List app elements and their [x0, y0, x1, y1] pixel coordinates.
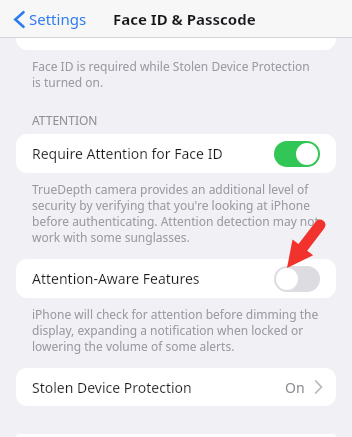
staticText: Face ID & Passcode: [113, 9, 256, 29]
other: Off: [274, 266, 320, 292]
staticText: On: [285, 378, 305, 397]
staticText: Face ID is required while Stolen Device …: [32, 58, 320, 90]
other: On: [274, 141, 320, 167]
staticText: iPhone will check for attention before d…: [32, 306, 320, 354]
staticText: Attention-Aware Features: [32, 269, 274, 288]
button[interactable]: Settings: [10, 5, 91, 33]
button[interactable]: Require Attention for Face ID: [16, 134, 336, 173]
button[interactable]: Stolen Device Protection: [16, 368, 336, 406]
staticText: TrueDepth camera provides an additional …: [32, 181, 320, 245]
staticText: Settings: [29, 9, 87, 29]
button[interactable]: Attention-Aware Features: [16, 259, 336, 298]
staticText: Require Attention for Face ID: [32, 144, 274, 163]
staticText: ATTENTION: [32, 112, 98, 128]
staticText: Stolen Device Protection: [32, 378, 285, 397]
